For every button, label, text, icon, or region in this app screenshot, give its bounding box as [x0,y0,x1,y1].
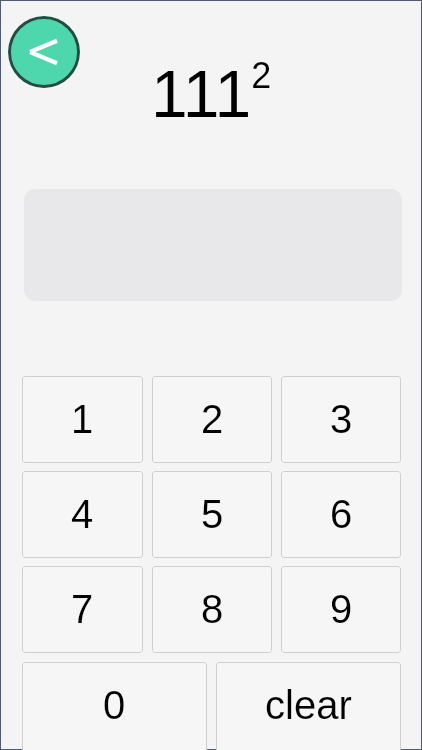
staticText: 0 [103,683,126,728]
button[interactable]: clear [216,662,401,750]
button[interactable]: 3 [281,376,401,463]
button[interactable]: 5 [152,471,272,558]
staticText: 1 [71,397,94,442]
button[interactable]: 4 [22,471,143,558]
staticText: 9 [330,587,353,632]
button[interactable]: 9 [281,566,401,653]
staticText: clear [265,683,352,728]
button[interactable]: 7 [22,566,143,653]
staticText: 7 [71,587,94,632]
button[interactable]: 8 [152,566,272,653]
button[interactable]: 0 [22,662,207,750]
button[interactable]: Back [8,16,80,88]
button[interactable]: 1 [22,376,143,463]
staticText: 8 [201,587,224,632]
staticText: 3 [330,397,353,442]
staticText: 2 [201,397,224,442]
staticText: 5 [201,492,224,537]
staticText: 6 [330,492,353,537]
button[interactable]: 2 [152,376,272,463]
staticText: 1112 [151,55,272,131]
staticText: 4 [71,492,94,537]
button[interactable]: 6 [281,471,401,558]
